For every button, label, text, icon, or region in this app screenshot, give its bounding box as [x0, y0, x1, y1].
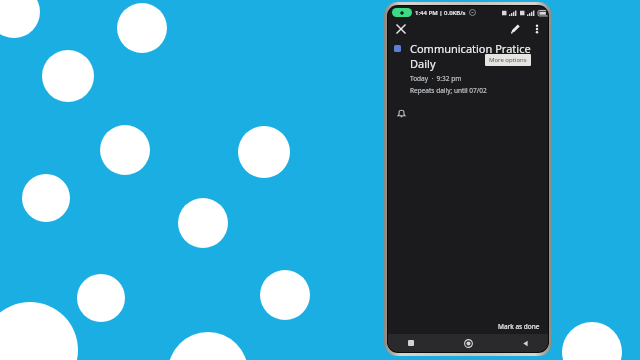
button[interactable]: More options — [529, 21, 545, 37]
button[interactable]: Home — [461, 336, 475, 350]
button[interactable]: Recents — [404, 336, 418, 350]
staticText: More options — [489, 56, 527, 64]
button[interactable]: Back — [518, 336, 532, 350]
button[interactable]: Mark as done — [495, 321, 543, 332]
staticText: Repeats daily; until 07/02 — [410, 86, 487, 95]
staticText: Mark as done — [498, 322, 540, 331]
staticText: Daily — [410, 56, 436, 71]
button[interactable]: Close — [393, 21, 409, 37]
staticText: 1:44 PM | 0.0KB/s — [415, 9, 466, 17]
staticText: Today · 9:32 pm — [410, 74, 462, 83]
button[interactable]: Reminder — [395, 107, 408, 120]
staticText: Communication Pratice — [410, 41, 531, 56]
button[interactable]: Edit — [507, 21, 523, 37]
